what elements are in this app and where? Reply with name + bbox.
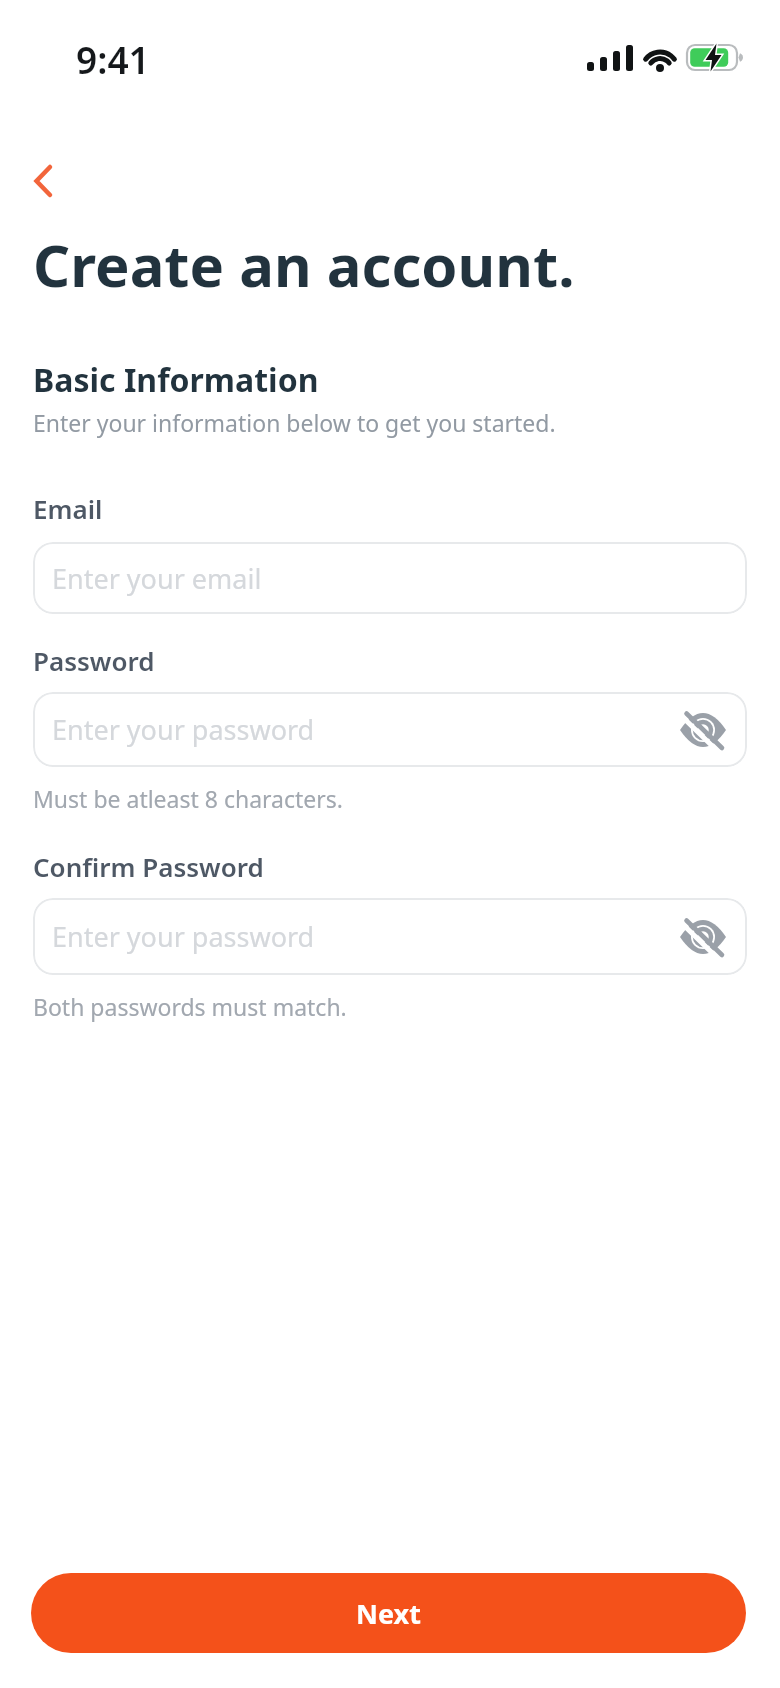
staticText: Password (33, 643, 155, 678)
staticText: Confirm Password (33, 849, 264, 884)
button[interactable]: Enter your password (33, 692, 747, 767)
staticText: Basic Information (33, 358, 319, 402)
staticText: Enter your password (52, 918, 315, 955)
staticText: Both passwords must match. (33, 991, 347, 1022)
staticText: 9:41 (76, 34, 150, 78)
staticText: Enter your password (52, 711, 315, 748)
staticText: Enter your information below to get you … (33, 407, 556, 438)
staticText: Next (356, 1595, 421, 1632)
button[interactable]: Enter your email (33, 542, 747, 614)
button[interactable]: Enter your password (33, 898, 747, 975)
button[interactable] (33, 163, 69, 199)
staticText: Must be atleast 8 characters. (33, 783, 344, 814)
staticText: Enter your email (52, 560, 262, 597)
staticText: Email (33, 491, 103, 526)
staticText: Create an account. (33, 225, 575, 304)
button[interactable]: Next (31, 1573, 746, 1653)
